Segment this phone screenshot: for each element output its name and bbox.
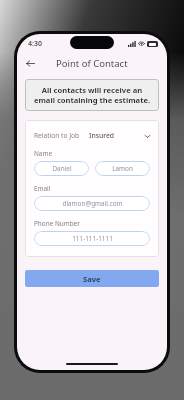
button[interactable]: 111-111-1111 [34,231,150,246]
staticText: Relation to Job [34,131,80,140]
staticText: Insured [89,131,115,140]
staticText: Save [83,274,101,284]
button[interactable]: Daniel [34,161,89,176]
staticText: Email [34,184,51,193]
button[interactable]: Lamon [95,161,150,176]
staticText: Point of Contact [56,57,128,70]
staticText: Lamon [112,164,133,173]
button[interactable]: dlamon@gmail.com [34,196,150,211]
staticText: 4:30 [28,39,42,49]
staticText: dlamon@gmail.com [62,199,123,208]
button[interactable]: Back [21,54,39,72]
staticText: 111-111-1111 [72,234,113,243]
staticText: Name [34,149,53,158]
staticText: All contacts will receive an email conta… [33,85,151,105]
button[interactable]: Relation to Job [34,131,150,140]
staticText: Phone Number [34,219,80,228]
button[interactable]: Save [25,270,159,287]
staticText: Daniel [52,164,72,173]
